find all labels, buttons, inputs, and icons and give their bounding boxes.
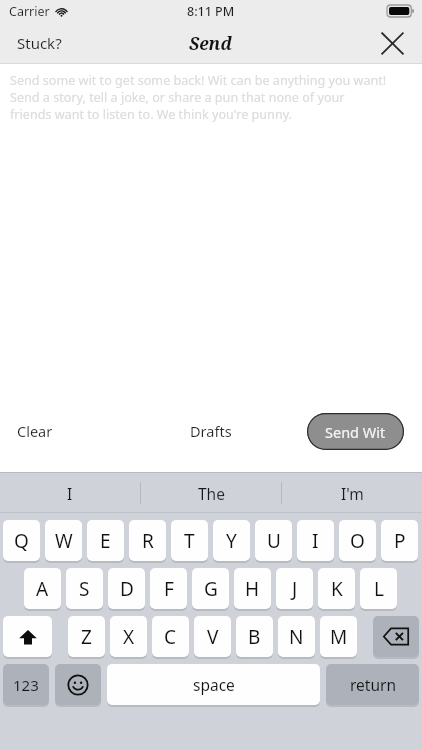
staticText: Send Wit xyxy=(325,422,386,442)
staticText: T xyxy=(184,528,195,554)
button[interactable]: B xyxy=(236,616,273,657)
button[interactable]: N xyxy=(278,616,315,657)
button[interactable] xyxy=(55,664,101,705)
staticText: L xyxy=(374,576,384,602)
staticText: Z xyxy=(81,624,92,650)
staticText: B xyxy=(248,624,261,650)
staticText: P xyxy=(394,528,406,554)
button[interactable]: L xyxy=(360,568,397,609)
button[interactable]: I xyxy=(297,520,334,561)
staticText: Send some wit to get some back! Wit can … xyxy=(10,72,387,89)
button[interactable]: H xyxy=(234,568,271,609)
staticText: I xyxy=(312,528,319,554)
staticText: H xyxy=(245,576,260,602)
staticText: F xyxy=(164,576,174,602)
button[interactable]: R xyxy=(129,520,166,561)
button[interactable]: D xyxy=(108,568,145,609)
staticText: Send xyxy=(189,31,233,55)
staticText: 123 xyxy=(13,675,39,695)
button[interactable]: Stuck? xyxy=(10,25,69,61)
button[interactable]: O xyxy=(339,520,376,561)
staticText: Stuck? xyxy=(17,33,62,53)
other: Emoji xyxy=(55,664,101,706)
button[interactable]: M xyxy=(320,616,357,657)
staticText: J xyxy=(292,576,298,602)
button[interactable]: A xyxy=(24,568,61,609)
button[interactable]: E xyxy=(87,520,124,561)
staticText: G xyxy=(204,576,218,602)
button[interactable]: Clear xyxy=(10,413,60,449)
staticText: M xyxy=(330,624,348,650)
button[interactable]: X xyxy=(110,616,147,657)
staticText: A xyxy=(36,576,49,602)
staticText: I'm xyxy=(341,483,364,504)
other: Shift xyxy=(3,616,52,658)
button[interactable] xyxy=(3,616,52,657)
button[interactable]: I xyxy=(0,473,140,513)
staticText: D xyxy=(120,576,134,602)
staticText: I xyxy=(67,483,73,504)
staticText: The xyxy=(198,483,225,504)
staticText: Q xyxy=(14,528,29,554)
button[interactable]: Q xyxy=(3,520,40,561)
button[interactable]: I'm xyxy=(282,473,422,513)
other: Backspace xyxy=(373,616,419,658)
staticText: friends want to listen to. We think you'… xyxy=(10,106,292,123)
button[interactable]: The xyxy=(141,473,281,513)
staticText: W xyxy=(55,528,73,554)
button[interactable]: C xyxy=(152,616,189,657)
staticText: S xyxy=(79,576,90,602)
staticText: Clear xyxy=(17,421,53,441)
staticText: space xyxy=(193,674,235,695)
button[interactable]: T xyxy=(171,520,208,561)
button[interactable]: Z xyxy=(68,616,105,657)
button[interactable]: Drafts xyxy=(183,413,239,449)
button[interactable]: U xyxy=(255,520,292,561)
staticText: Carrier xyxy=(9,3,50,20)
button[interactable]: Send Wit xyxy=(307,413,404,450)
staticText: U xyxy=(267,528,281,554)
button[interactable]: V xyxy=(194,616,231,657)
staticText: X xyxy=(123,624,135,650)
staticText: N xyxy=(289,624,304,650)
staticText: V xyxy=(207,624,219,650)
staticText: 8:11 PM xyxy=(187,3,235,20)
staticText: return xyxy=(350,674,396,695)
button[interactable]: Y xyxy=(213,520,250,561)
button[interactable]: P xyxy=(381,520,418,561)
button[interactable]: Close xyxy=(369,22,415,64)
button[interactable]: F xyxy=(150,568,187,609)
button[interactable]: J xyxy=(276,568,313,609)
button[interactable]: space xyxy=(107,664,320,705)
staticText: K xyxy=(331,576,343,602)
button[interactable] xyxy=(373,616,419,657)
button[interactable]: K xyxy=(318,568,355,609)
staticText: Y xyxy=(226,528,237,554)
staticText: O xyxy=(350,528,365,554)
staticText: C xyxy=(164,624,177,650)
button[interactable]: W xyxy=(45,520,82,561)
button[interactable]: 123 xyxy=(3,664,49,705)
staticText: R xyxy=(142,528,154,554)
button[interactable]: return xyxy=(326,664,419,705)
staticText: E xyxy=(100,528,111,554)
staticText: Send a story, tell a joke, or share a pu… xyxy=(10,89,345,106)
button[interactable]: G xyxy=(192,568,229,609)
staticText: Drafts xyxy=(190,421,232,441)
button[interactable]: S xyxy=(66,568,103,609)
